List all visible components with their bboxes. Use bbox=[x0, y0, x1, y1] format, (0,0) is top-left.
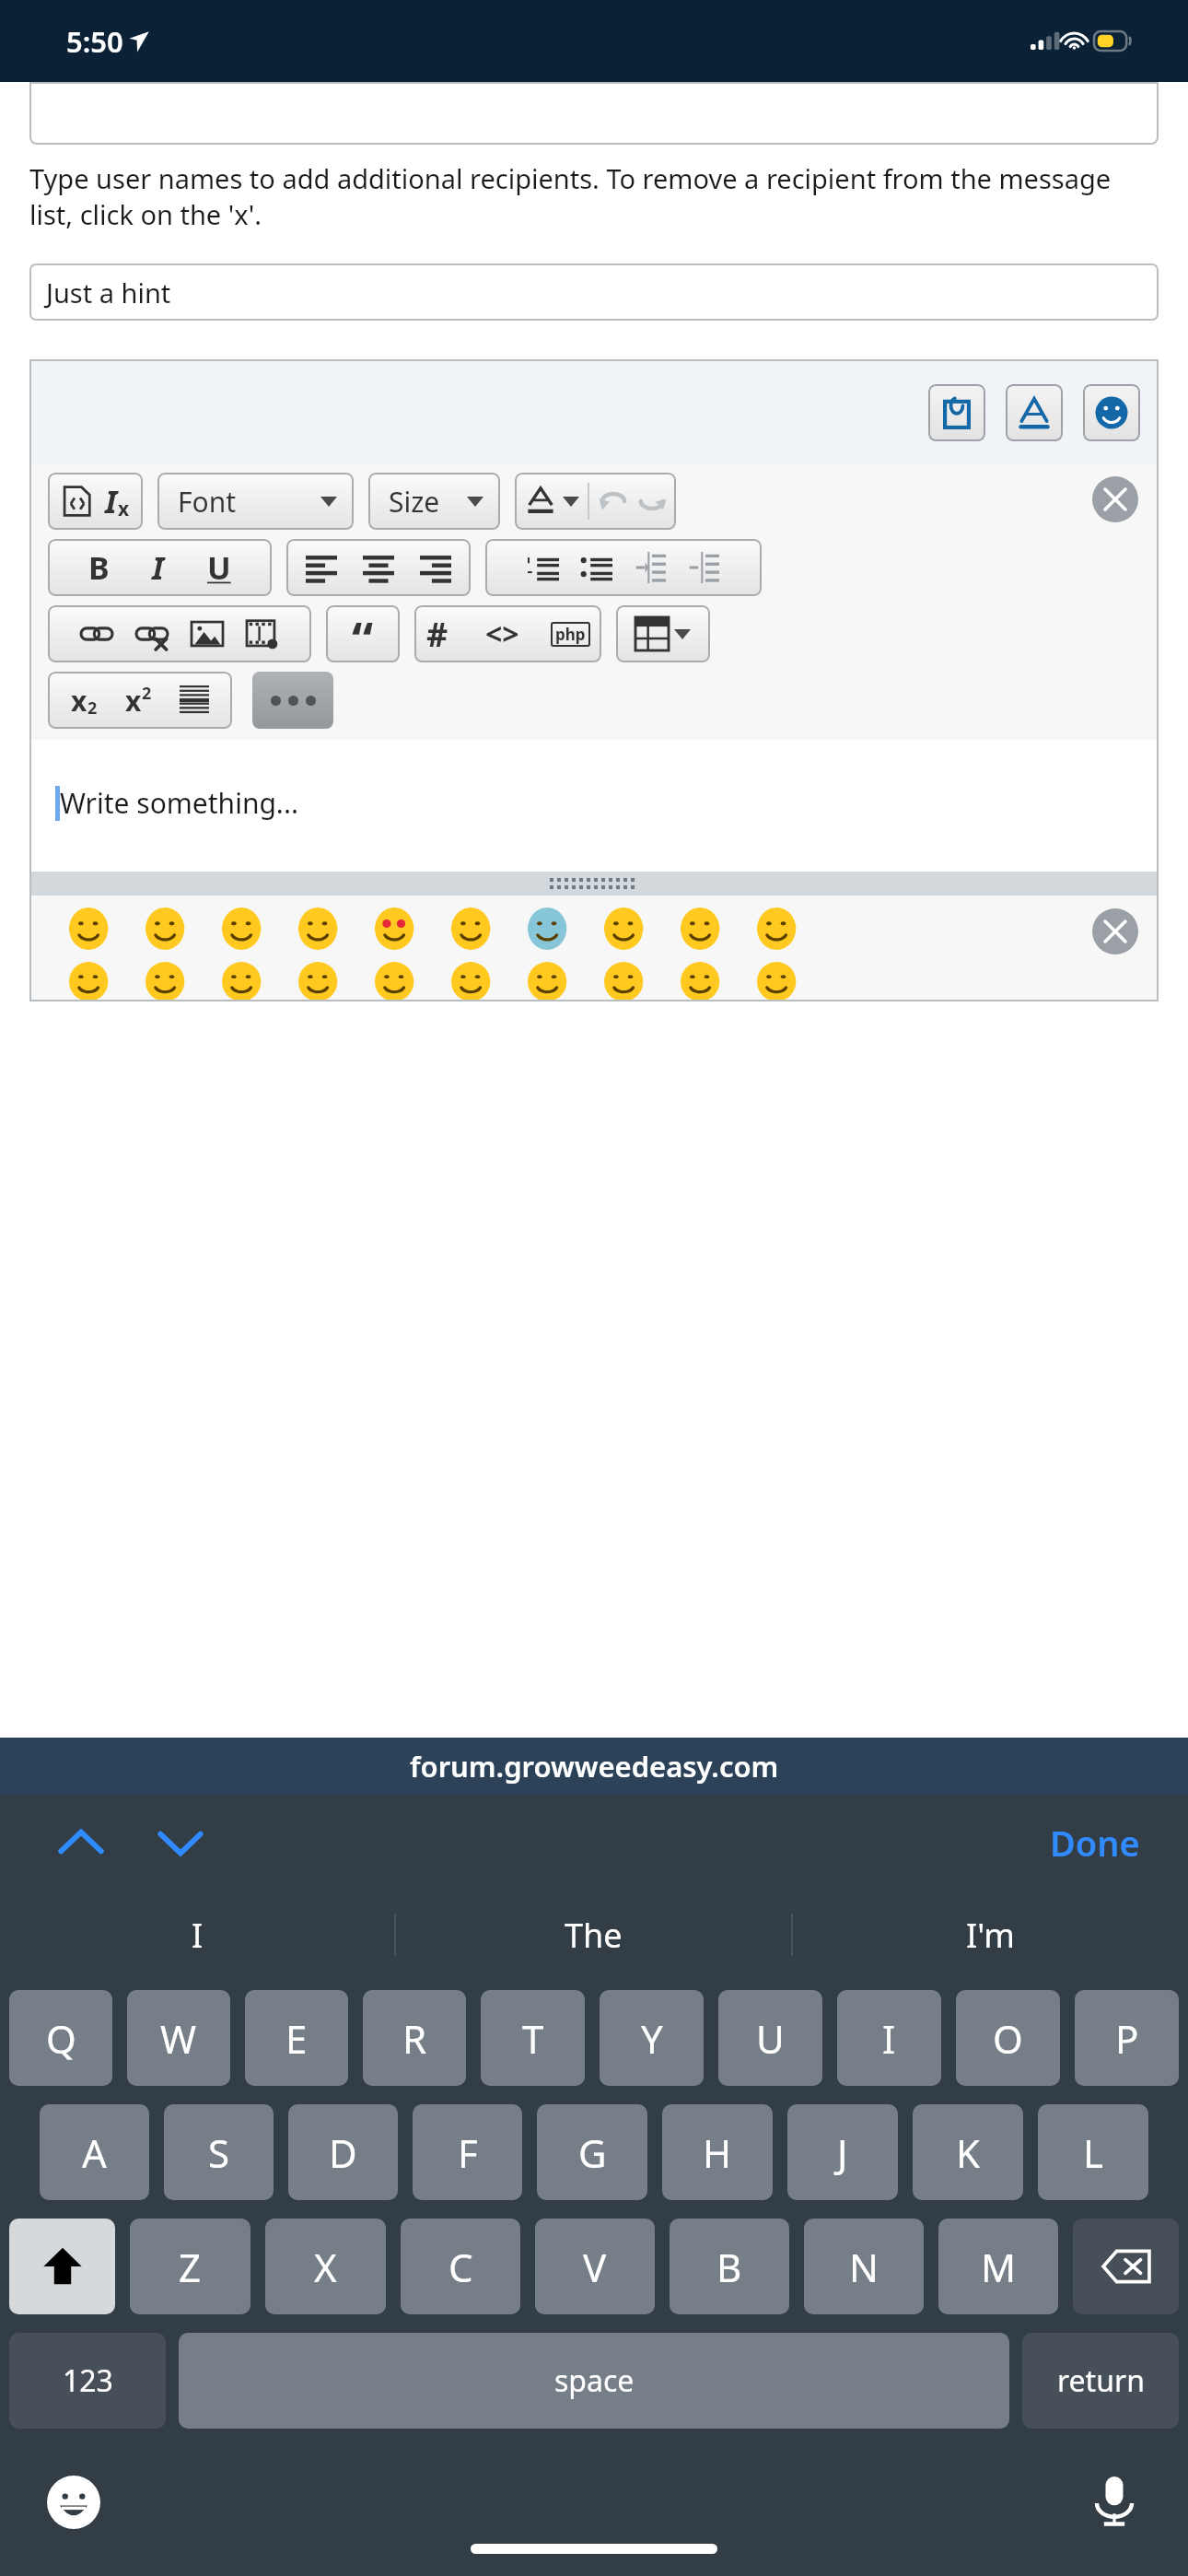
staticText: “ bbox=[352, 605, 374, 662]
staticText: G bbox=[578, 2126, 607, 2179]
button[interactable]: Just a hint bbox=[29, 263, 1159, 321]
button[interactable] bbox=[296, 905, 344, 953]
button[interactable]: “ bbox=[326, 605, 400, 662]
button[interactable]: I bbox=[0, 1891, 394, 1979]
button[interactable]: I bbox=[837, 1990, 941, 2086]
button[interactable]: U bbox=[718, 1990, 822, 2086]
button[interactable]: Font bbox=[157, 473, 354, 530]
staticText: U bbox=[756, 2012, 785, 2065]
button[interactable]: Q bbox=[9, 1990, 112, 2086]
staticText: Just a hint bbox=[46, 275, 171, 310]
button[interactable]: Emoji keyboard bbox=[35, 2464, 112, 2541]
button[interactable]: Emoji bbox=[1083, 384, 1140, 441]
button[interactable] bbox=[601, 905, 649, 953]
staticText: 123 bbox=[63, 2360, 113, 2401]
button[interactable]: O bbox=[956, 1990, 1060, 2086]
button[interactable] bbox=[525, 905, 573, 953]
staticText: J bbox=[837, 2126, 848, 2179]
button[interactable] bbox=[448, 962, 496, 1001]
button[interactable] bbox=[143, 962, 191, 1001]
staticText: F bbox=[458, 2126, 478, 2179]
button[interactable] bbox=[48, 605, 311, 662]
button[interactable]: E bbox=[245, 1990, 348, 2086]
button[interactable]: M bbox=[938, 2219, 1058, 2314]
button[interactable] bbox=[678, 962, 726, 1001]
button[interactable] bbox=[485, 539, 762, 596]
button[interactable]: return bbox=[1022, 2333, 1179, 2429]
button[interactable] bbox=[219, 905, 267, 953]
staticText: R bbox=[402, 2012, 427, 2065]
button[interactable]: Dictation bbox=[1076, 2464, 1153, 2541]
button[interactable]: I'm bbox=[793, 1891, 1188, 1979]
button[interactable]: x bbox=[48, 672, 232, 729]
staticText: x bbox=[118, 496, 130, 522]
staticText: T bbox=[522, 2012, 544, 2065]
button[interactable] bbox=[372, 905, 420, 953]
button[interactable] bbox=[219, 962, 267, 1001]
button[interactable]: space bbox=[179, 2333, 1009, 2429]
staticText: x bbox=[71, 682, 87, 720]
button[interactable] bbox=[754, 962, 802, 1001]
button[interactable]: B bbox=[670, 2219, 789, 2314]
button[interactable] bbox=[66, 905, 114, 953]
button[interactable]: forum.growweedeasy.com bbox=[0, 1738, 1188, 1795]
button[interactable]: Attach bbox=[928, 384, 985, 441]
button[interactable] bbox=[66, 962, 114, 1001]
staticText: K bbox=[956, 2126, 980, 2179]
button[interactable]: P bbox=[1075, 1990, 1179, 2086]
staticText: I bbox=[105, 480, 118, 522]
button[interactable]: V bbox=[535, 2219, 655, 2314]
button[interactable] bbox=[286, 539, 471, 596]
button[interactable]: Font color bbox=[1006, 384, 1063, 441]
button[interactable]: T bbox=[481, 1990, 585, 2086]
button[interactable] bbox=[678, 905, 726, 953]
button[interactable]: B bbox=[48, 539, 272, 596]
button[interactable]: Z bbox=[130, 2219, 250, 2314]
button[interactable]: Shift bbox=[9, 2219, 115, 2314]
button[interactable] bbox=[616, 605, 710, 662]
button[interactable]: Close bbox=[1092, 476, 1138, 522]
button[interactable] bbox=[754, 905, 802, 953]
button[interactable]: S bbox=[164, 2104, 274, 2200]
staticText: B bbox=[716, 2241, 742, 2293]
button[interactable]: Y bbox=[600, 1990, 704, 2086]
staticText: E bbox=[285, 2012, 308, 2065]
button[interactable]: N bbox=[804, 2219, 924, 2314]
button[interactable] bbox=[525, 962, 573, 1001]
button[interactable]: W bbox=[127, 1990, 230, 2086]
button[interactable]: # bbox=[414, 605, 601, 662]
button[interactable]: Done bbox=[1050, 1819, 1140, 1867]
button[interactable]: The bbox=[396, 1891, 791, 1979]
button[interactable] bbox=[296, 962, 344, 1001]
button[interactable]: F bbox=[413, 2104, 522, 2200]
button[interactable] bbox=[29, 82, 1159, 145]
staticText: <> bbox=[485, 614, 519, 654]
button[interactable]: Delete bbox=[1073, 2219, 1179, 2314]
button[interactable]: Close bbox=[1092, 908, 1138, 954]
button[interactable]: H bbox=[662, 2104, 773, 2200]
button[interactable]: L bbox=[1038, 2104, 1148, 2200]
button[interactable]: G bbox=[537, 2104, 647, 2200]
staticText: Type user names to add additional recipi… bbox=[29, 160, 1159, 232]
button[interactable]: X bbox=[265, 2219, 386, 2314]
button[interactable] bbox=[143, 905, 191, 953]
button[interactable]: Write something... bbox=[29, 740, 1159, 872]
button[interactable]: C bbox=[401, 2219, 520, 2314]
staticText: X bbox=[314, 2241, 337, 2293]
button[interactable]: Next field bbox=[149, 1811, 212, 1874]
button[interactable] bbox=[515, 473, 676, 530]
button[interactable]: I bbox=[48, 473, 143, 530]
button[interactable]: R bbox=[363, 1990, 466, 2086]
button[interactable] bbox=[372, 962, 420, 1001]
button[interactable]: D bbox=[288, 2104, 398, 2200]
staticText: I bbox=[882, 2012, 896, 2065]
button[interactable]: K bbox=[913, 2104, 1023, 2200]
button[interactable]: 123 bbox=[9, 2333, 166, 2429]
button[interactable] bbox=[601, 962, 649, 1001]
button[interactable]: A bbox=[40, 2104, 149, 2200]
button[interactable]: Previous field bbox=[50, 1811, 112, 1874]
button[interactable] bbox=[448, 905, 496, 953]
button[interactable]: More bbox=[252, 672, 333, 729]
button[interactable]: Size bbox=[368, 473, 500, 530]
button[interactable]: J bbox=[787, 2104, 898, 2200]
